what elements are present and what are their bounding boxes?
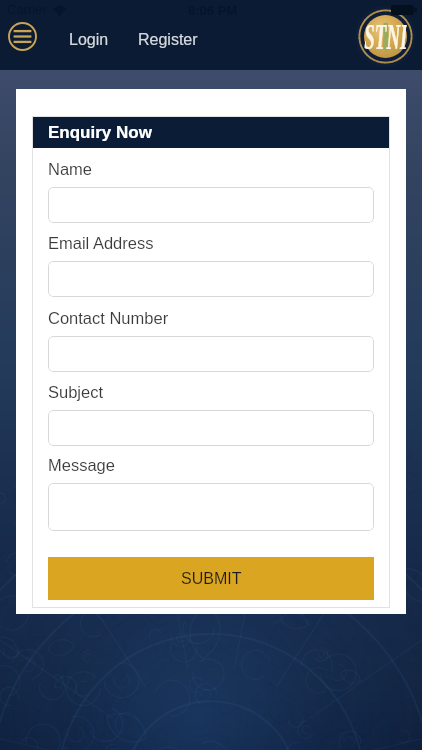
button[interactable]: [48, 410, 374, 446]
staticText: SUBMIT: [181, 570, 242, 588]
staticText: STNI: [364, 17, 407, 56]
button[interactable]: [48, 483, 374, 531]
button[interactable]: [48, 261, 374, 297]
staticText: Subject: [48, 383, 104, 401]
staticText: Enquiry Now: [48, 123, 152, 142]
staticText: Contact Number: [48, 309, 169, 327]
staticText: Name: [48, 160, 93, 178]
button[interactable]: Login: [62, 26, 116, 54]
button[interactable]: STNI logo: [355, 6, 416, 67]
staticText: Message: [48, 456, 115, 474]
button[interactable]: [48, 336, 374, 372]
button[interactable]: Open navigation menu: [8, 22, 37, 51]
button[interactable]: Register: [131, 26, 205, 54]
button[interactable]: SUBMIT: [48, 557, 374, 600]
button[interactable]: [48, 187, 374, 223]
staticText: Email Address: [48, 234, 154, 252]
